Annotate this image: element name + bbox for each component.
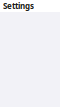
- staticText: Settings: [3, 1, 34, 11]
